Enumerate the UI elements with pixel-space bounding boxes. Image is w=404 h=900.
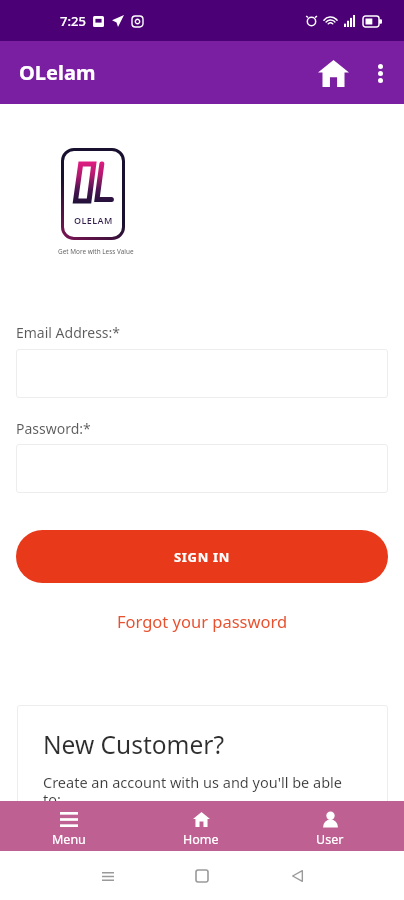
button[interactable]: Recents: [84, 852, 132, 900]
staticText: New Customer?: [43, 728, 225, 761]
button[interactable]: Password field: [16, 444, 388, 493]
button[interactable]: Forgot your password: [107, 606, 298, 636]
button[interactable]: Home: [179, 801, 223, 851]
staticText: 7:25: [60, 12, 86, 30]
staticText: Get More with Less Value: [58, 247, 134, 256]
staticText: User: [316, 831, 344, 848]
button[interactable]: More options: [358, 51, 402, 95]
staticText: OLELAM: [74, 214, 113, 226]
button[interactable]: Email Address field: [16, 349, 388, 398]
button[interactable]: SIGN IN: [16, 530, 388, 583]
staticText: Menu: [52, 831, 86, 848]
staticText: Home: [183, 831, 219, 848]
button[interactable]: Back: [273, 852, 321, 900]
staticText: SIGN IN: [174, 548, 231, 566]
button[interactable]: Home: [178, 852, 226, 900]
button[interactable]: Home: [311, 51, 355, 95]
staticText: Forgot your password: [117, 610, 288, 632]
staticText: Password:*: [16, 419, 91, 438]
button[interactable]: User: [312, 801, 348, 851]
button[interactable]: Menu: [48, 801, 90, 851]
staticText: Create an account with us and you'll be …: [43, 772, 355, 809]
staticText: OLelam: [19, 59, 96, 86]
staticText: Email Address:*: [16, 323, 121, 342]
